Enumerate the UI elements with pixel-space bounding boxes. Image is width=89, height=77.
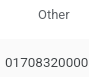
staticText: Other xyxy=(38,7,70,22)
staticText: 01708320000 xyxy=(5,54,89,70)
button[interactable]: Other xyxy=(0,0,89,39)
button[interactable]: 01708320000 xyxy=(0,39,89,77)
